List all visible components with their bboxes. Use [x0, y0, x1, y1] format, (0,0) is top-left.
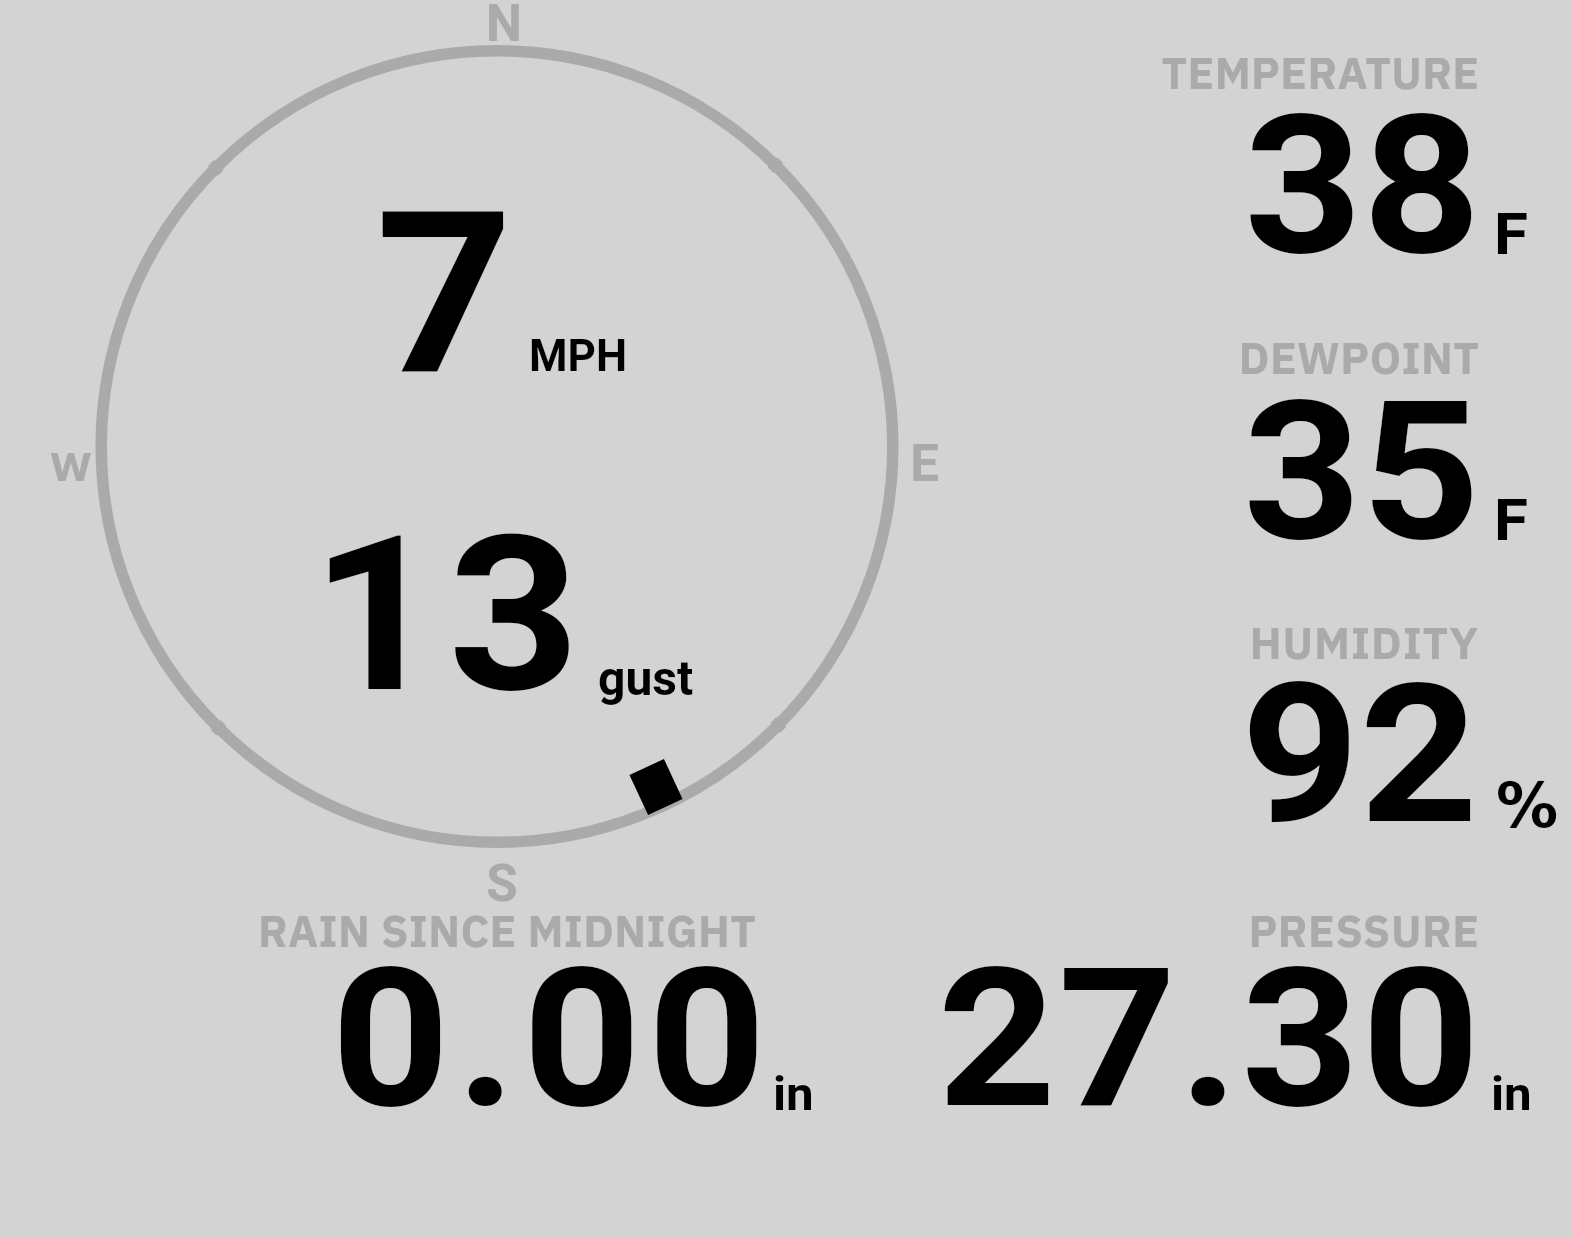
button[interactable]: Pressure 27.30 inches	[900, 898, 1540, 1128]
button[interactable]: Wind 7 miles per hour, gusting 13, from …	[96, 46, 898, 848]
button[interactable]: Humidity 92 percent	[1140, 610, 1540, 840]
button[interactable]: Temperature 38 degrees Fahrenheit	[1140, 40, 1540, 270]
button[interactable]: Dewpoint 35 degrees Fahrenheit	[1140, 325, 1540, 555]
button[interactable]: Rain since midnight 0.00 inches	[240, 898, 800, 1128]
